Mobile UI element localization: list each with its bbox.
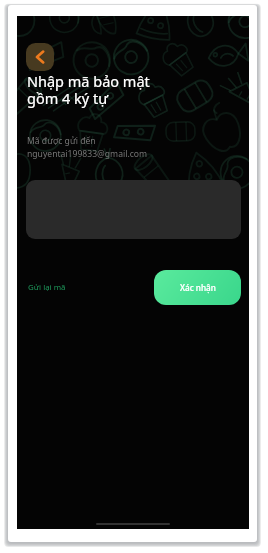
button[interactable]: Gửi lại mã xyxy=(26,278,68,297)
button[interactable]: Back xyxy=(26,43,54,71)
staticText: Xác nhận xyxy=(180,282,216,293)
staticText: Nhập mã bảo mật gồm 4 ký tự xyxy=(27,71,150,108)
staticText: Gửi lại mã xyxy=(28,282,66,293)
button[interactable]: Xác nhận xyxy=(154,270,241,305)
staticText: Mã được gửi đến nguyentai199833@gmail.co… xyxy=(27,135,148,159)
